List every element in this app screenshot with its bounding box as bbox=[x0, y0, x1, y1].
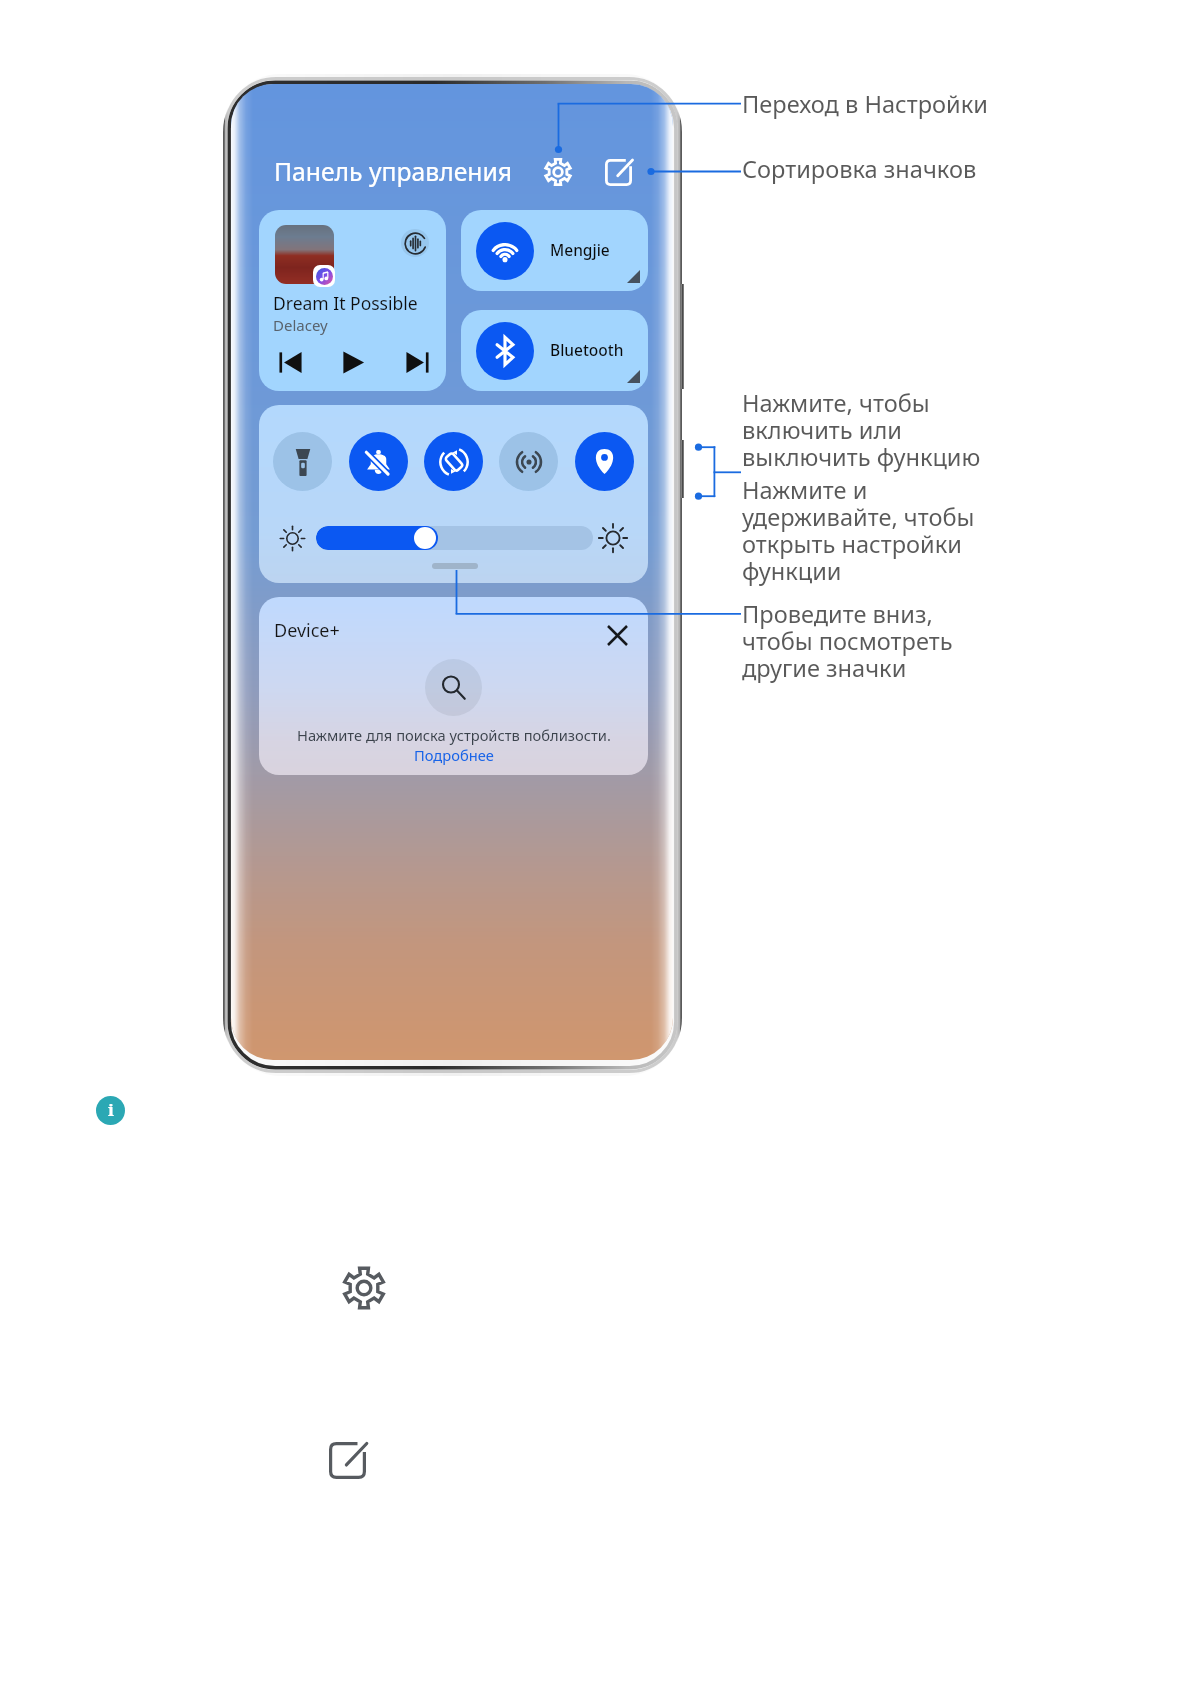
button[interactable]: Auto-rotate bbox=[424, 432, 483, 491]
button[interactable]: Close bbox=[599, 617, 635, 653]
button[interactable]: Подробнее bbox=[414, 745, 494, 765]
staticText: Переход в Настройки bbox=[742, 88, 988, 120]
staticText: Нажмите для поиска устройств поблизости. bbox=[297, 725, 611, 745]
button[interactable]: Silent mode bbox=[349, 432, 408, 491]
staticText: Delacey bbox=[273, 315, 328, 335]
button[interactable]: Settings bbox=[538, 152, 578, 192]
button[interactable]: Mengjie bbox=[461, 210, 648, 291]
staticText: Панель управления bbox=[274, 155, 512, 189]
button[interactable]: Previous bbox=[274, 346, 306, 378]
button[interactable]: Play bbox=[337, 346, 369, 378]
staticText: Нажмите и удерживайте, чтобы открыть нас… bbox=[742, 474, 975, 587]
button[interactable]: Search for devices bbox=[425, 659, 482, 716]
button[interactable]: Location bbox=[575, 432, 634, 491]
staticText: Проведите вниз, чтобы посмотреть другие … bbox=[742, 598, 953, 684]
staticText: Нажмите, чтобы включить или выключить фу… bbox=[742, 387, 981, 473]
button[interactable]: Hotspot bbox=[499, 432, 558, 491]
button[interactable]: Bluetooth bbox=[461, 310, 648, 391]
button[interactable]: Flashlight bbox=[273, 432, 332, 491]
staticText: Сортировка значков bbox=[742, 153, 977, 185]
staticText: Mengjie bbox=[550, 239, 610, 260]
staticText: Device+ bbox=[274, 618, 340, 643]
button[interactable]: Audio effects bbox=[259, 210, 446, 391]
button[interactable]: Sort icons bbox=[599, 153, 637, 191]
staticText: Dream It Possible bbox=[273, 291, 418, 315]
staticText: i bbox=[108, 1098, 114, 1121]
button[interactable]: Audio effects bbox=[401, 229, 429, 257]
button[interactable]: Brightness bbox=[316, 526, 593, 550]
button[interactable]: Next bbox=[401, 346, 433, 378]
staticText: Bluetooth bbox=[550, 339, 624, 360]
